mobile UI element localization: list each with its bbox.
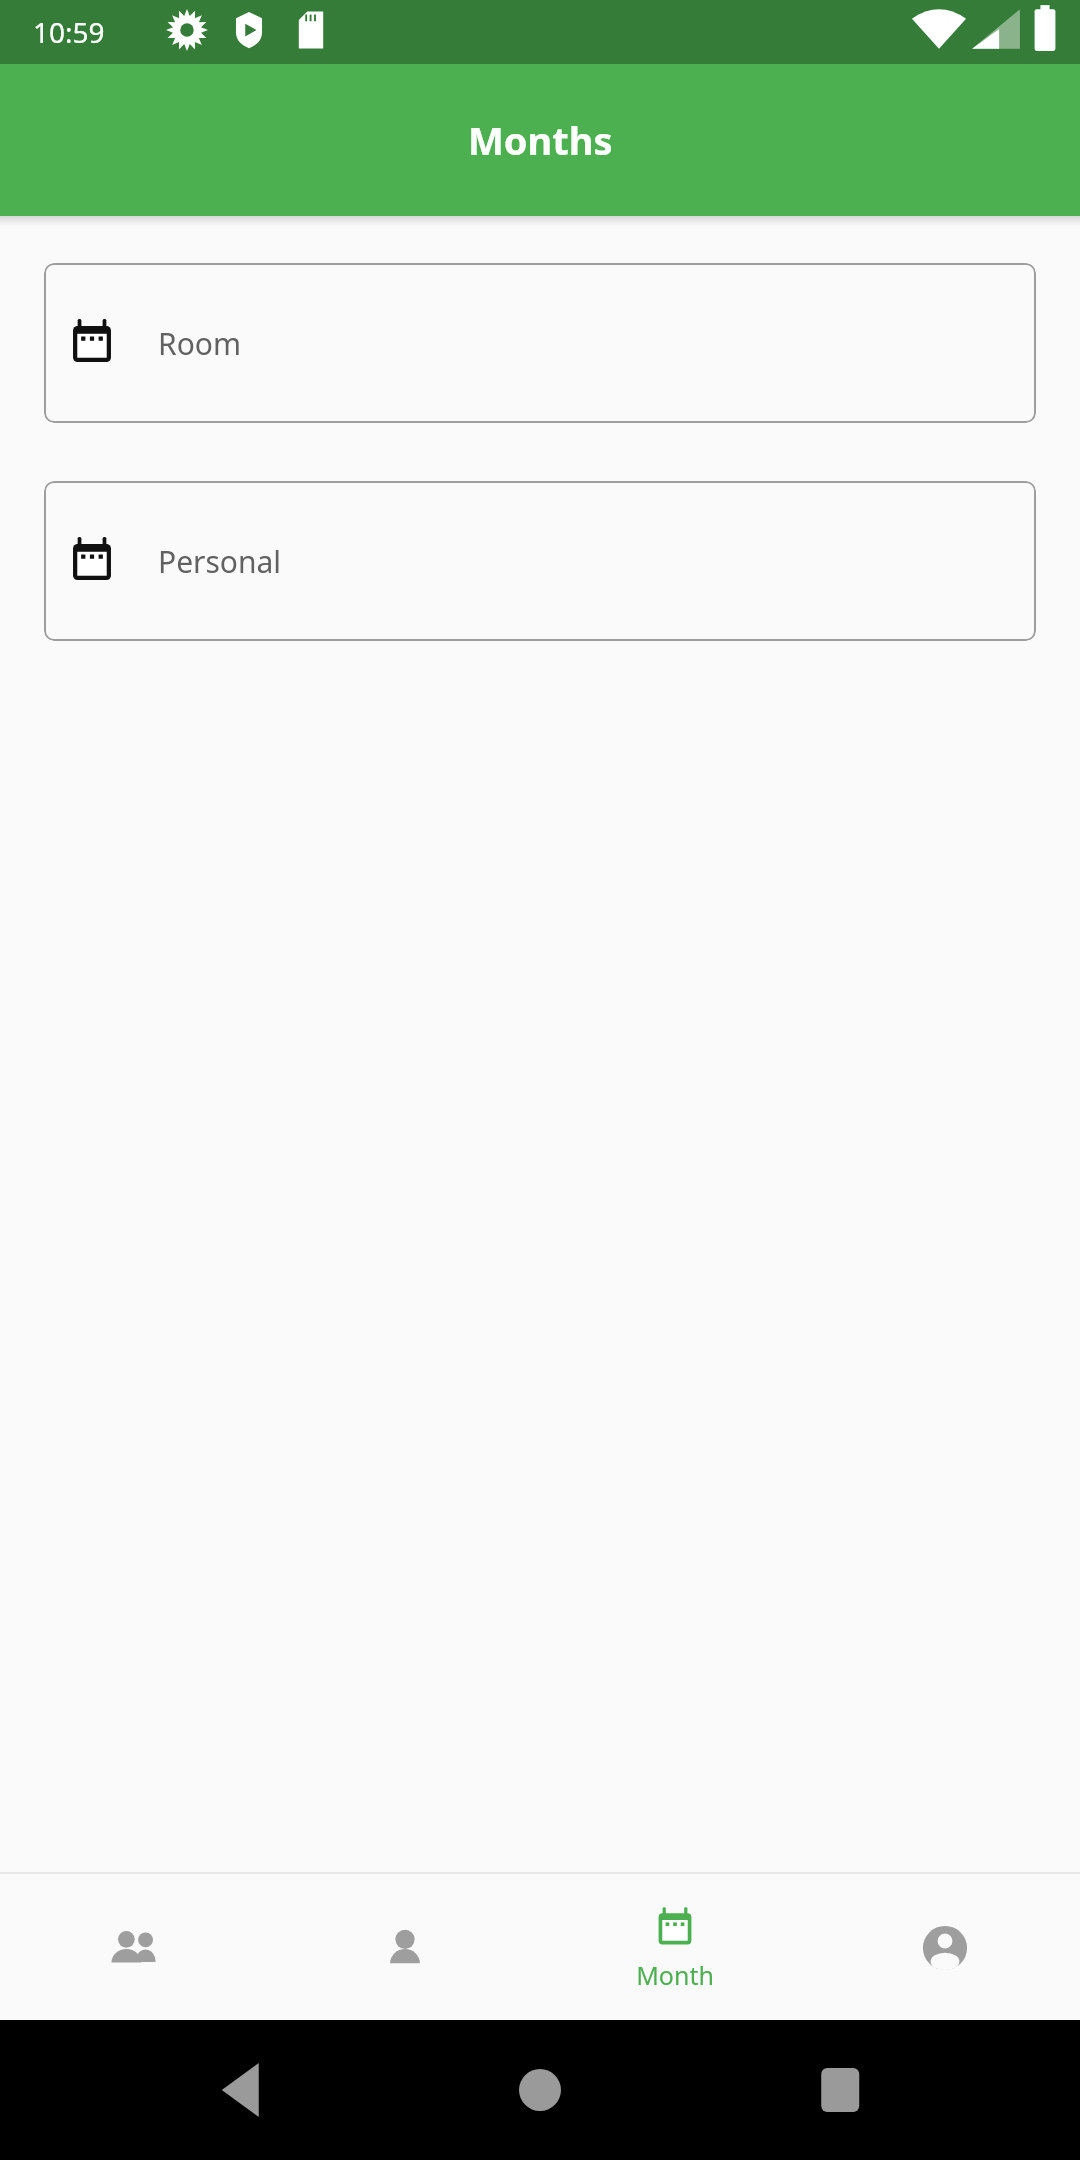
staticText: 10:59 [33,13,105,51]
staticText: Month [636,1958,714,1992]
button[interactable]: Groups [0,1875,270,2020]
button[interactable]: Room [44,263,1036,423]
button[interactable]: Person [270,1875,540,2020]
button[interactable]: Month [540,1875,810,2020]
staticText: Months [468,114,613,166]
button[interactable]: Personal [44,481,1036,641]
staticText: Room [158,323,242,364]
button[interactable]: Account [810,1875,1080,2020]
staticText: Personal [158,541,282,582]
